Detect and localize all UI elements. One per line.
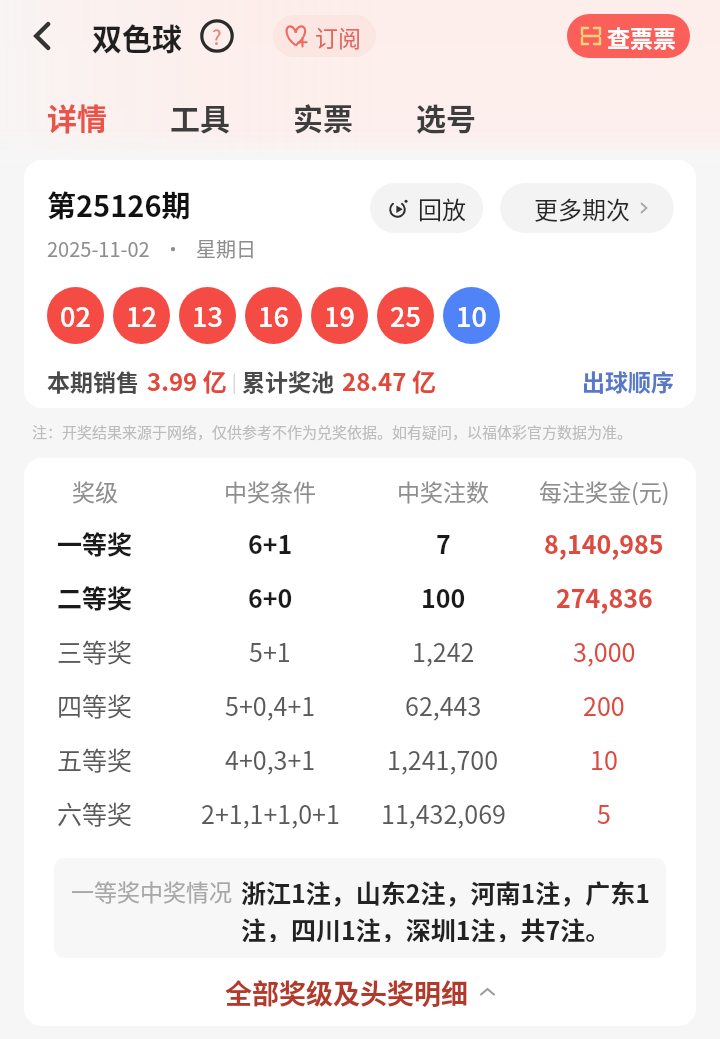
staticText: 五等奖: [57, 741, 133, 777]
staticText: 实票: [293, 95, 353, 138]
staticText: 10: [456, 296, 487, 335]
staticText: 三等奖: [57, 633, 133, 669]
staticText: 注：开奖结果来源于网络，仅供参考不作为兑奖依据。如有疑问，以福体彩官方数据为准。: [32, 421, 633, 443]
staticText: 25: [390, 296, 421, 335]
button[interactable]: 回放: [370, 183, 483, 233]
staticText: 12: [126, 296, 157, 335]
staticText: 中奖注数: [397, 474, 489, 507]
button[interactable]: 订阅: [273, 15, 376, 57]
staticText: 2025-11-02: [47, 234, 150, 263]
staticText: 4+0,3+1: [225, 741, 316, 777]
staticText: 3,000: [573, 633, 636, 669]
staticText: 中奖条件: [224, 474, 316, 507]
staticText: 一等奖中奖情况: [71, 874, 232, 907]
staticText: 16: [258, 296, 289, 335]
button[interactable]: 详情: [34, 85, 120, 148]
staticText: 11,432,069: [381, 795, 506, 831]
button[interactable]: 选号: [403, 85, 489, 148]
staticText: 1,242: [412, 633, 475, 669]
staticText: 二等奖: [57, 579, 133, 615]
staticText: 28.47 亿: [342, 363, 436, 398]
staticText: 8,140,985: [544, 525, 664, 561]
staticText: 100: [421, 579, 466, 615]
staticText: 62,443: [405, 687, 482, 723]
staticText: 3.99 亿: [147, 363, 227, 398]
staticText: 5+1: [249, 633, 291, 669]
staticText: 1,241,700: [387, 741, 499, 777]
staticText: |: [232, 368, 237, 394]
staticText: 6+0: [248, 579, 293, 615]
button[interactable]: 全部奖级及头奖明细: [24, 958, 696, 1026]
staticText: 回放: [418, 191, 466, 226]
staticText: 星期日: [196, 234, 256, 263]
button[interactable]: 出球顺序: [582, 364, 674, 397]
staticText: 出球顺序: [582, 364, 674, 397]
staticText: 更多期次: [534, 191, 630, 226]
staticText: 5: [597, 795, 611, 831]
button[interactable]: 更多期次: [500, 183, 674, 233]
staticText: 5+0,4+1: [225, 687, 316, 723]
staticText: 7: [436, 525, 451, 561]
staticText: 200: [583, 687, 625, 723]
staticText: 六等奖: [57, 795, 133, 831]
staticText: 10: [590, 741, 618, 777]
staticText: 一等奖: [57, 525, 133, 561]
button[interactable]: 实票: [280, 85, 366, 148]
button[interactable]: 工具: [157, 85, 243, 148]
staticText: 全部奖级及头奖明细: [225, 973, 468, 1012]
staticText: 274,836: [556, 579, 653, 615]
button[interactable]: Help: [199, 18, 235, 54]
staticText: 02: [60, 296, 91, 335]
staticText: 四等奖: [57, 687, 133, 723]
staticText: 奖级: [72, 474, 118, 507]
staticText: ·: [163, 234, 183, 263]
staticText: 订阅: [315, 20, 361, 53]
staticText: 6+1: [248, 525, 293, 561]
button[interactable]: Back: [22, 14, 66, 58]
staticText: 详情: [47, 95, 107, 138]
staticText: 工具: [170, 95, 230, 138]
staticText: 第25126期: [47, 183, 191, 225]
button[interactable]: 查票票: [567, 14, 690, 58]
staticText: 累计奖池: [242, 364, 334, 397]
staticText: 2+1,1+1,0+1: [201, 795, 340, 831]
staticText: 13: [192, 296, 223, 335]
staticText: 双色球: [92, 15, 182, 58]
staticText: ?: [212, 22, 222, 51]
staticText: 查票票: [607, 20, 676, 53]
staticText: 19: [324, 296, 355, 335]
staticText: 每注奖金(元): [539, 474, 670, 507]
staticText: 选号: [416, 95, 476, 138]
staticText: 本期销售: [47, 364, 139, 397]
staticText: 浙江1注，山东2注，河南1注，广东1注，四川1注，深圳1注，共7注。: [241, 874, 654, 942]
